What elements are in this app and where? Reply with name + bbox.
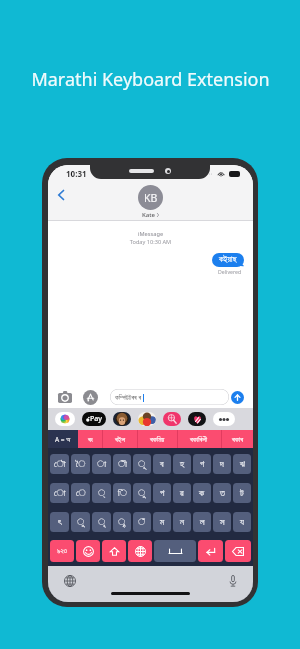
button[interactable]: More apps [213, 412, 235, 426]
button[interactable]: ো [50, 483, 69, 503]
button[interactable]: ৰকাৰিলী [177, 430, 221, 448]
button[interactable]: ৎ [50, 512, 69, 532]
button[interactable]: Music [188, 412, 206, 426]
staticText: ৰকাৰ [232, 436, 243, 443]
staticText: ূ [138, 460, 146, 469]
staticText: ৈ [76, 460, 86, 469]
button[interactable]: ন [173, 512, 191, 532]
staticText: ্ [98, 489, 106, 498]
staticText: য [240, 518, 244, 527]
button[interactable]: ৌ [50, 454, 69, 474]
button[interactable]: হ [173, 454, 191, 474]
staticText: Kate [142, 211, 155, 219]
staticText: দ [220, 460, 224, 469]
button[interactable]: গ [193, 454, 211, 474]
button[interactable]: ৰকমিয় [137, 430, 177, 448]
button[interactable]: Camera [57, 390, 72, 404]
button[interactable]: Apple Pay [82, 412, 106, 426]
button[interactable]: া [92, 454, 111, 474]
staticText: ু [138, 489, 146, 498]
button[interactable]: ী [113, 454, 131, 474]
staticText: ি [118, 489, 127, 498]
staticText: ৎ [58, 518, 62, 527]
button[interactable]: ৰং [78, 430, 102, 448]
button[interactable]: ৰকাৰ [221, 430, 253, 448]
button[interactable]: KB [138, 185, 163, 219]
button[interactable]: ু [133, 483, 151, 503]
staticText: ট [240, 489, 244, 498]
staticText: কম্পিউটৰৰ ৰ [115, 393, 142, 402]
staticText: Delivered [218, 268, 242, 275]
button[interactable]: ূ [133, 454, 151, 474]
button[interactable]: Return [198, 540, 223, 562]
staticText: ৌ [54, 460, 66, 469]
button[interactable]: ু [71, 512, 90, 532]
staticText: ৰকাৰিলী [190, 436, 208, 443]
staticText: ৯২৩ [57, 548, 67, 555]
staticText: ী [118, 460, 127, 469]
staticText: Pay [90, 414, 102, 424]
staticText: ঁ [138, 518, 146, 527]
staticText: ো [54, 489, 66, 498]
button[interactable]: ৱ [173, 483, 191, 503]
button[interactable]: Globe [63, 574, 77, 588]
staticText: হ [180, 460, 185, 469]
staticText: ম [160, 518, 165, 527]
staticText: Today 10:30 AM [48, 238, 253, 246]
button[interactable]: ক [193, 483, 211, 503]
button[interactable]: ৃ [92, 512, 111, 532]
button[interactable]: Photos [55, 412, 75, 426]
button[interactable]: A = অ [48, 430, 78, 448]
button[interactable]: ে [71, 483, 90, 503]
staticText: 10:31 [66, 168, 87, 179]
button[interactable]: Memoji [113, 412, 131, 426]
staticText: ক [199, 489, 205, 498]
button[interactable]: য [233, 512, 251, 532]
staticText: কইয়াছ [219, 256, 237, 264]
staticText: ে [76, 489, 86, 498]
button[interactable]: ি [113, 483, 131, 503]
button[interactable]: দ [213, 454, 231, 474]
button[interactable]: প [153, 483, 171, 503]
button[interactable]: ত [213, 483, 231, 503]
staticText: Marathi Keyboard Extension [31, 67, 270, 92]
staticText: গ [200, 460, 205, 469]
button[interactable]: Numbers [50, 540, 74, 562]
button[interactable]: কম্পিউটৰৰ ৰ [110, 389, 229, 405]
button[interactable]: Stickers [138, 412, 156, 426]
button[interactable]: Image search [163, 412, 181, 426]
button[interactable]: Emoji [76, 540, 100, 562]
staticText: ৰইল [115, 436, 125, 443]
button[interactable]: ৰইল [102, 430, 137, 448]
staticText: iMessage [48, 230, 253, 238]
button[interactable]: Backspace [225, 540, 251, 562]
button[interactable]: Space [154, 540, 196, 562]
button[interactable]: ল [193, 512, 211, 532]
staticText: ৰং [88, 436, 93, 443]
button[interactable]: ৈ [71, 454, 90, 474]
button[interactable]: ঁ [133, 512, 151, 532]
button[interactable]: Send [231, 391, 244, 404]
staticText: প [160, 489, 165, 498]
staticText: KB [144, 191, 158, 205]
button[interactable]: ্ [92, 483, 111, 503]
button[interactable]: ব [153, 454, 171, 474]
staticText: ত [220, 489, 225, 498]
staticText: স [220, 518, 225, 527]
button[interactable]: Shift [102, 540, 126, 562]
button[interactable]: স [213, 512, 231, 532]
button[interactable]: Dictation [226, 574, 240, 588]
button[interactable]: App Store [83, 390, 98, 405]
staticText: ব [160, 460, 164, 469]
staticText: ঝ [240, 460, 245, 469]
button[interactable]: ৄ [113, 512, 131, 532]
staticText: ৱ [180, 489, 184, 498]
button[interactable]: Back [53, 187, 69, 203]
staticText: A = অ [55, 435, 71, 444]
button[interactable]: ঝ [233, 454, 251, 474]
staticText: ন [180, 518, 184, 527]
button[interactable]: Language [128, 540, 152, 562]
staticText: ল [200, 518, 205, 527]
button[interactable]: ট [233, 483, 251, 503]
button[interactable]: ম [153, 512, 171, 532]
